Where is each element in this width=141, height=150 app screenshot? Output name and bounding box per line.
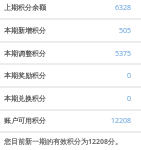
staticText: 您目前新一期的有效积分为12208分。 (4, 137, 123, 147)
staticText: 6328 (115, 3, 132, 13)
button[interactable]: 本期新增积分 (0, 19, 141, 42)
button[interactable]: 上期积分余额 (0, 0, 141, 19)
button[interactable]: 账户可用积分 (0, 109, 141, 132)
staticText: 本期兑换积分 (4, 94, 46, 103)
staticText: 本期新增积分 (4, 26, 46, 35)
staticText: 本期调整积分 (4, 49, 46, 58)
button[interactable]: 本期奖励积分 (0, 64, 141, 87)
staticText: 账户可用积分 (4, 116, 46, 125)
staticText: 0 (127, 71, 132, 81)
staticText: 0 (127, 94, 132, 104)
staticText: 5375 (115, 49, 132, 59)
button[interactable]: 本期兑换积分 (0, 87, 141, 110)
staticText: 上期积分余额 (4, 3, 46, 12)
staticText: 本期奖励积分 (4, 71, 46, 80)
staticText: 505 (119, 26, 132, 36)
staticText: 12208 (111, 116, 132, 126)
button[interactable]: 本期调整积分 (0, 42, 141, 65)
